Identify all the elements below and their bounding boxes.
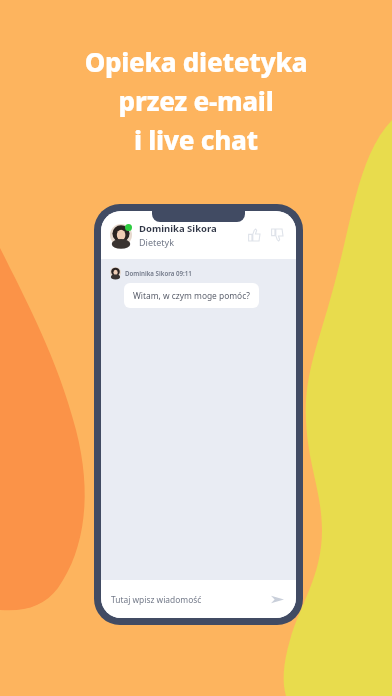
staticText: Witam, w czym moge pomóc? xyxy=(133,290,250,301)
staticText: Tutaj wpisz wiadomość xyxy=(111,594,202,605)
button[interactable]: Tutaj wpisz wiadomość xyxy=(101,580,296,618)
staticText: Dominika Sikora 09:11 xyxy=(125,269,192,277)
button[interactable]: Send message xyxy=(268,590,286,608)
staticText: przez e-mail xyxy=(0,83,392,118)
staticText: Dietetyk xyxy=(139,236,174,248)
button[interactable]: Like xyxy=(244,225,264,245)
button[interactable]: Dislike xyxy=(267,225,287,245)
staticText: Dominika Sikora xyxy=(139,222,217,235)
staticText: Opieka dietetyka xyxy=(0,44,392,79)
staticText: i live chat xyxy=(0,122,392,157)
